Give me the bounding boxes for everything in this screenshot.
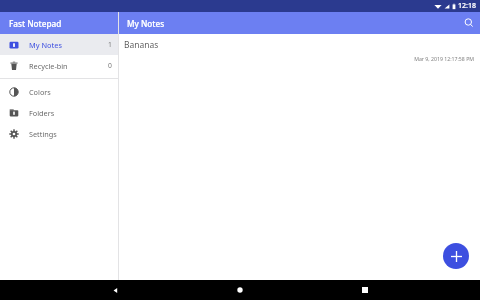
- staticText: 1: [108, 40, 112, 49]
- staticText: Bananas: [124, 39, 159, 51]
- button[interactable]: Recycle-bin: [0, 55, 119, 76]
- button[interactable]: Home: [230, 280, 250, 300]
- staticText: 12:18: [458, 1, 476, 11]
- button[interactable]: Search: [458, 12, 480, 34]
- button[interactable]: Back: [105, 280, 125, 300]
- button[interactable]: New note: [443, 243, 469, 269]
- staticText: My Notes: [127, 18, 165, 29]
- staticText: Fast Notepad: [9, 18, 62, 29]
- staticText: Folders: [29, 108, 112, 118]
- button[interactable]: My Notes: [0, 34, 119, 55]
- staticText: 0: [108, 61, 112, 70]
- staticText: Colors: [29, 87, 112, 97]
- button[interactable]: Colors: [0, 81, 119, 102]
- staticText: My Notes: [29, 40, 108, 50]
- staticText: Settings: [29, 129, 112, 139]
- button[interactable]: Recent apps: [355, 280, 375, 300]
- staticText: Recycle-bin: [29, 61, 108, 71]
- button[interactable]: Bananas: [119, 34, 480, 66]
- button[interactable]: Settings: [0, 123, 119, 144]
- staticText: Mar 9, 2019 12:17:58 PM: [124, 55, 474, 62]
- button[interactable]: Folders: [0, 102, 119, 123]
